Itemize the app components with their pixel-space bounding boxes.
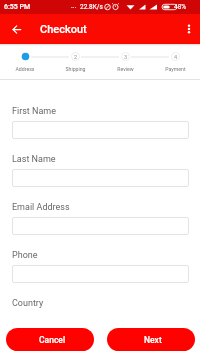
staticText: Country: [12, 298, 44, 309]
staticText: Last Name: [12, 154, 56, 165]
staticText: Checkout: [40, 23, 87, 36]
staticText: Cancel: [39, 335, 66, 345]
staticText: Email Address: [12, 202, 70, 213]
staticText: Payment: [165, 66, 186, 72]
staticText: 6:55 PM: [4, 3, 31, 11]
button[interactable]: [12, 121, 189, 139]
button[interactable]: Cancel: [6, 328, 94, 351]
staticText: 48%: [174, 3, 187, 11]
button[interactable]: 3: [100, 44, 150, 72]
staticText: Next: [144, 335, 162, 345]
staticText: First Name: [12, 106, 57, 117]
staticText: 4: [174, 54, 178, 60]
button[interactable]: 4: [150, 44, 200, 72]
button[interactable]: [12, 169, 189, 187]
staticText: ...: [71, 2, 77, 10]
button[interactable]: Address: [0, 44, 50, 72]
button[interactable]: 2: [50, 44, 100, 72]
button[interactable]: More options: [178, 18, 200, 40]
button[interactable]: Back: [4, 17, 28, 41]
staticText: Address: [15, 66, 35, 72]
staticText: Phone: [12, 250, 38, 261]
staticText: 22.8K/s: [80, 3, 103, 11]
button[interactable]: [12, 265, 189, 283]
staticText: Review: [117, 66, 134, 72]
staticText: Shipping: [65, 66, 86, 72]
button[interactable]: Next: [107, 328, 195, 351]
staticText: 2: [74, 54, 78, 60]
button[interactable]: [12, 217, 189, 235]
staticText: 3: [124, 54, 128, 60]
